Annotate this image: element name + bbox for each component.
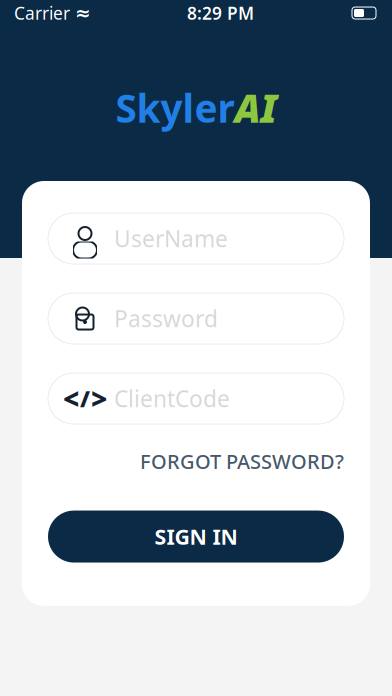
- button[interactable]: SIGN IN: [48, 511, 344, 563]
- staticText: >: [91, 380, 107, 417]
- staticText: Password: [114, 303, 218, 333]
- staticText: ≈: [75, 2, 91, 24]
- button[interactable]: UserName: [48, 213, 344, 264]
- button[interactable]: <: [48, 373, 344, 424]
- button[interactable]: Password: [48, 293, 344, 344]
- staticText: ClientCode: [114, 383, 230, 413]
- staticText: FORGOT PASSWORD?: [140, 448, 344, 475]
- button[interactable]: FORGOT PASSWORD?: [140, 448, 344, 475]
- staticText: Carrier: [14, 1, 70, 24]
- staticText: 8:29 PM: [187, 1, 254, 24]
- staticText: AI: [234, 82, 276, 133]
- staticText: SIGN IN: [154, 522, 237, 551]
- staticText: <: [63, 380, 79, 417]
- staticText: /: [80, 383, 90, 413]
- staticText: UserName: [114, 223, 228, 253]
- staticText: Skyler: [115, 82, 234, 133]
